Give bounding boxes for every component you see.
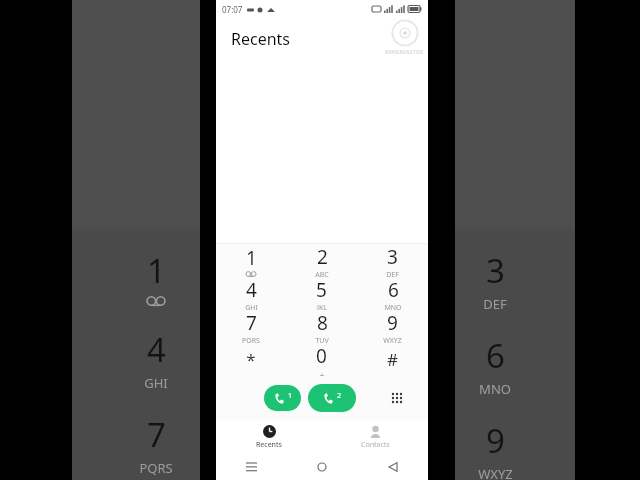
staticText: 7 bbox=[246, 310, 257, 336]
staticText: Recents bbox=[256, 440, 282, 450]
staticText: WXYZ bbox=[383, 336, 402, 343]
staticText: WXYZ bbox=[478, 465, 513, 480]
button[interactable]: Contacts bbox=[322, 420, 428, 454]
staticText: 1 bbox=[246, 245, 257, 271]
staticText: 2 bbox=[317, 244, 328, 270]
staticText: KINEMASTER bbox=[385, 48, 424, 56]
staticText: TUV bbox=[315, 336, 329, 343]
staticText: # bbox=[387, 348, 398, 371]
button[interactable]: 1 bbox=[216, 244, 286, 277]
button[interactable]: 2 bbox=[286, 244, 357, 277]
staticText: 1 bbox=[147, 248, 166, 293]
button[interactable]: Dialpad bbox=[382, 383, 412, 413]
staticText: ABC bbox=[315, 270, 329, 277]
button[interactable]: 3 bbox=[357, 244, 428, 277]
button[interactable]: # bbox=[357, 343, 428, 376]
button[interactable]: * bbox=[216, 343, 286, 376]
button[interactable]: Back bbox=[357, 454, 428, 480]
staticText: MNO bbox=[479, 380, 511, 398]
staticText: 6 bbox=[486, 333, 505, 378]
button[interactable]: 5 bbox=[286, 277, 357, 310]
staticText: Contacts bbox=[361, 440, 390, 450]
button[interactable]: 9 bbox=[357, 310, 428, 343]
button[interactable]: 8 bbox=[286, 310, 357, 343]
staticText: + bbox=[319, 369, 325, 376]
staticText: 3 bbox=[486, 248, 505, 293]
button[interactable]: Recents bbox=[216, 420, 322, 454]
staticText: 5 bbox=[316, 277, 327, 303]
button[interactable]: Home bbox=[286, 454, 357, 480]
staticText: 2 bbox=[337, 391, 342, 401]
button[interactable]: 6 bbox=[357, 277, 428, 310]
staticText: 1 bbox=[288, 391, 293, 401]
staticText: MNO bbox=[384, 303, 402, 310]
staticText: PQRS bbox=[139, 459, 173, 477]
button[interactable]: Call with SIM 2 bbox=[308, 384, 356, 412]
staticText: DEF bbox=[483, 295, 507, 313]
staticText: 7 bbox=[147, 412, 166, 457]
staticText: 6 bbox=[388, 277, 399, 303]
button[interactable]: 4 bbox=[216, 277, 286, 310]
staticText: * bbox=[246, 348, 256, 371]
staticText: 0 bbox=[316, 343, 327, 369]
staticText: 3 bbox=[387, 244, 398, 270]
staticText: Recents bbox=[231, 28, 291, 50]
staticText: 9 bbox=[486, 418, 505, 463]
staticText: PQRS bbox=[242, 336, 260, 343]
button[interactable]: 7 bbox=[216, 310, 286, 343]
staticText: 4 bbox=[147, 327, 166, 372]
staticText: GHI bbox=[144, 374, 168, 392]
staticText: 07:07 bbox=[222, 4, 243, 15]
staticText: 4 bbox=[246, 277, 257, 303]
staticText: GHI bbox=[245, 303, 258, 310]
staticText: DEF bbox=[386, 270, 399, 277]
staticText: 9 bbox=[387, 310, 398, 336]
button[interactable]: 0 bbox=[286, 343, 357, 376]
staticText: 8 bbox=[317, 310, 328, 336]
button[interactable]: Call with SIM 1 bbox=[264, 385, 301, 411]
button[interactable]: Recent apps bbox=[216, 454, 286, 480]
staticText: JKL bbox=[317, 303, 327, 310]
